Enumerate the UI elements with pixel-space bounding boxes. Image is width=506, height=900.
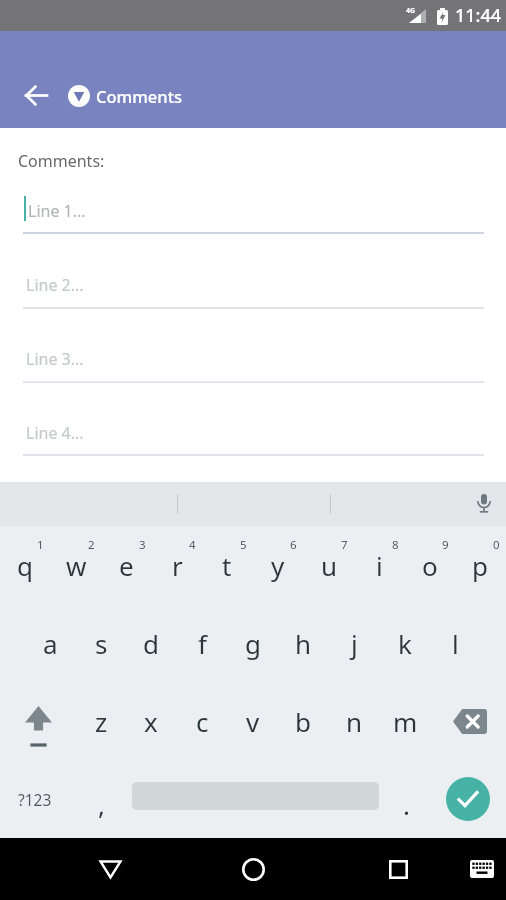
staticText: e bbox=[119, 548, 134, 583]
button[interactable]: c bbox=[177, 682, 227, 760]
button[interactable]: n bbox=[329, 682, 379, 760]
button[interactable]: a bbox=[25, 604, 75, 682]
staticText: u bbox=[321, 548, 338, 583]
staticText: Comments bbox=[96, 85, 182, 107]
staticText: z bbox=[95, 704, 108, 739]
staticText: m bbox=[393, 704, 418, 739]
button[interactable]: y bbox=[253, 526, 303, 604]
button[interactable] bbox=[440, 682, 500, 760]
staticText: 11:44 bbox=[455, 3, 502, 28]
button[interactable] bbox=[25, 84, 48, 107]
button[interactable]: f bbox=[177, 604, 227, 682]
staticText: l bbox=[452, 626, 459, 661]
staticText: p bbox=[472, 548, 488, 583]
button[interactable]: o bbox=[405, 526, 455, 604]
staticText: g bbox=[245, 626, 261, 661]
staticText: k bbox=[398, 626, 412, 661]
staticText: Comments: bbox=[18, 150, 105, 172]
button[interactable]: u bbox=[304, 526, 354, 604]
staticText: y bbox=[271, 548, 285, 583]
staticText: 5 bbox=[240, 537, 247, 553]
button[interactable]: . bbox=[382, 760, 430, 838]
staticText: c bbox=[196, 704, 209, 739]
staticText: t bbox=[222, 548, 232, 583]
staticText: 7 bbox=[341, 537, 348, 553]
button[interactable]: m bbox=[380, 682, 430, 760]
button[interactable]: g bbox=[228, 604, 278, 682]
button[interactable]: b bbox=[278, 682, 328, 760]
button[interactable]: j bbox=[329, 604, 379, 682]
staticText: x bbox=[144, 704, 158, 739]
staticText: v bbox=[246, 704, 260, 739]
staticText: h bbox=[295, 626, 312, 661]
button[interactable] bbox=[458, 838, 506, 900]
staticText: 1 bbox=[37, 537, 44, 553]
staticText: Line 4... bbox=[26, 422, 84, 444]
button[interactable] bbox=[370, 838, 426, 900]
button[interactable]: s bbox=[76, 604, 126, 682]
staticText: j bbox=[351, 626, 358, 661]
staticText: 9 bbox=[442, 537, 449, 553]
button[interactable]: r bbox=[152, 526, 202, 604]
button[interactable]: e bbox=[101, 526, 151, 604]
button[interactable]: w bbox=[51, 526, 101, 604]
staticText: d bbox=[143, 626, 159, 661]
staticText: 0 bbox=[493, 537, 500, 553]
button[interactable] bbox=[446, 777, 490, 821]
staticText: a bbox=[43, 626, 58, 661]
staticText: n bbox=[346, 704, 363, 739]
staticText: . bbox=[403, 787, 410, 822]
staticText: 4G bbox=[406, 6, 416, 16]
button[interactable]: h bbox=[278, 604, 328, 682]
staticText: 8 bbox=[392, 537, 399, 553]
staticText: Line 3... bbox=[26, 348, 84, 370]
staticText: 4 bbox=[189, 537, 196, 553]
staticText: r bbox=[172, 548, 183, 583]
button[interactable]: q bbox=[0, 526, 50, 604]
staticText: Line 1... bbox=[28, 200, 86, 222]
staticText: b bbox=[295, 704, 311, 739]
button[interactable]: d bbox=[126, 604, 176, 682]
button[interactable]: x bbox=[126, 682, 176, 760]
button[interactable] bbox=[82, 838, 138, 900]
button[interactable]: i bbox=[354, 526, 404, 604]
button[interactable]: p bbox=[455, 526, 505, 604]
button[interactable]: t bbox=[202, 526, 252, 604]
staticText: Line 2... bbox=[26, 274, 84, 296]
staticText: q bbox=[17, 548, 33, 583]
staticText: w bbox=[66, 548, 87, 583]
button[interactable] bbox=[225, 838, 281, 900]
staticText: , bbox=[98, 787, 105, 822]
button[interactable]: z bbox=[76, 682, 126, 760]
button[interactable]: v bbox=[228, 682, 278, 760]
staticText: s bbox=[95, 626, 108, 661]
staticText: i bbox=[376, 548, 383, 583]
staticText: f bbox=[198, 626, 207, 661]
button[interactable]: l bbox=[430, 604, 480, 682]
staticText: 6 bbox=[290, 537, 297, 553]
staticText: ?123 bbox=[18, 789, 52, 810]
staticText: 2 bbox=[88, 537, 95, 553]
button[interactable]: ?123 bbox=[0, 760, 70, 838]
button[interactable]: k bbox=[380, 604, 430, 682]
button[interactable] bbox=[0, 682, 76, 760]
staticText: 3 bbox=[139, 537, 146, 553]
button[interactable]: , bbox=[77, 760, 125, 838]
staticText: o bbox=[422, 548, 438, 583]
button[interactable] bbox=[462, 482, 506, 526]
